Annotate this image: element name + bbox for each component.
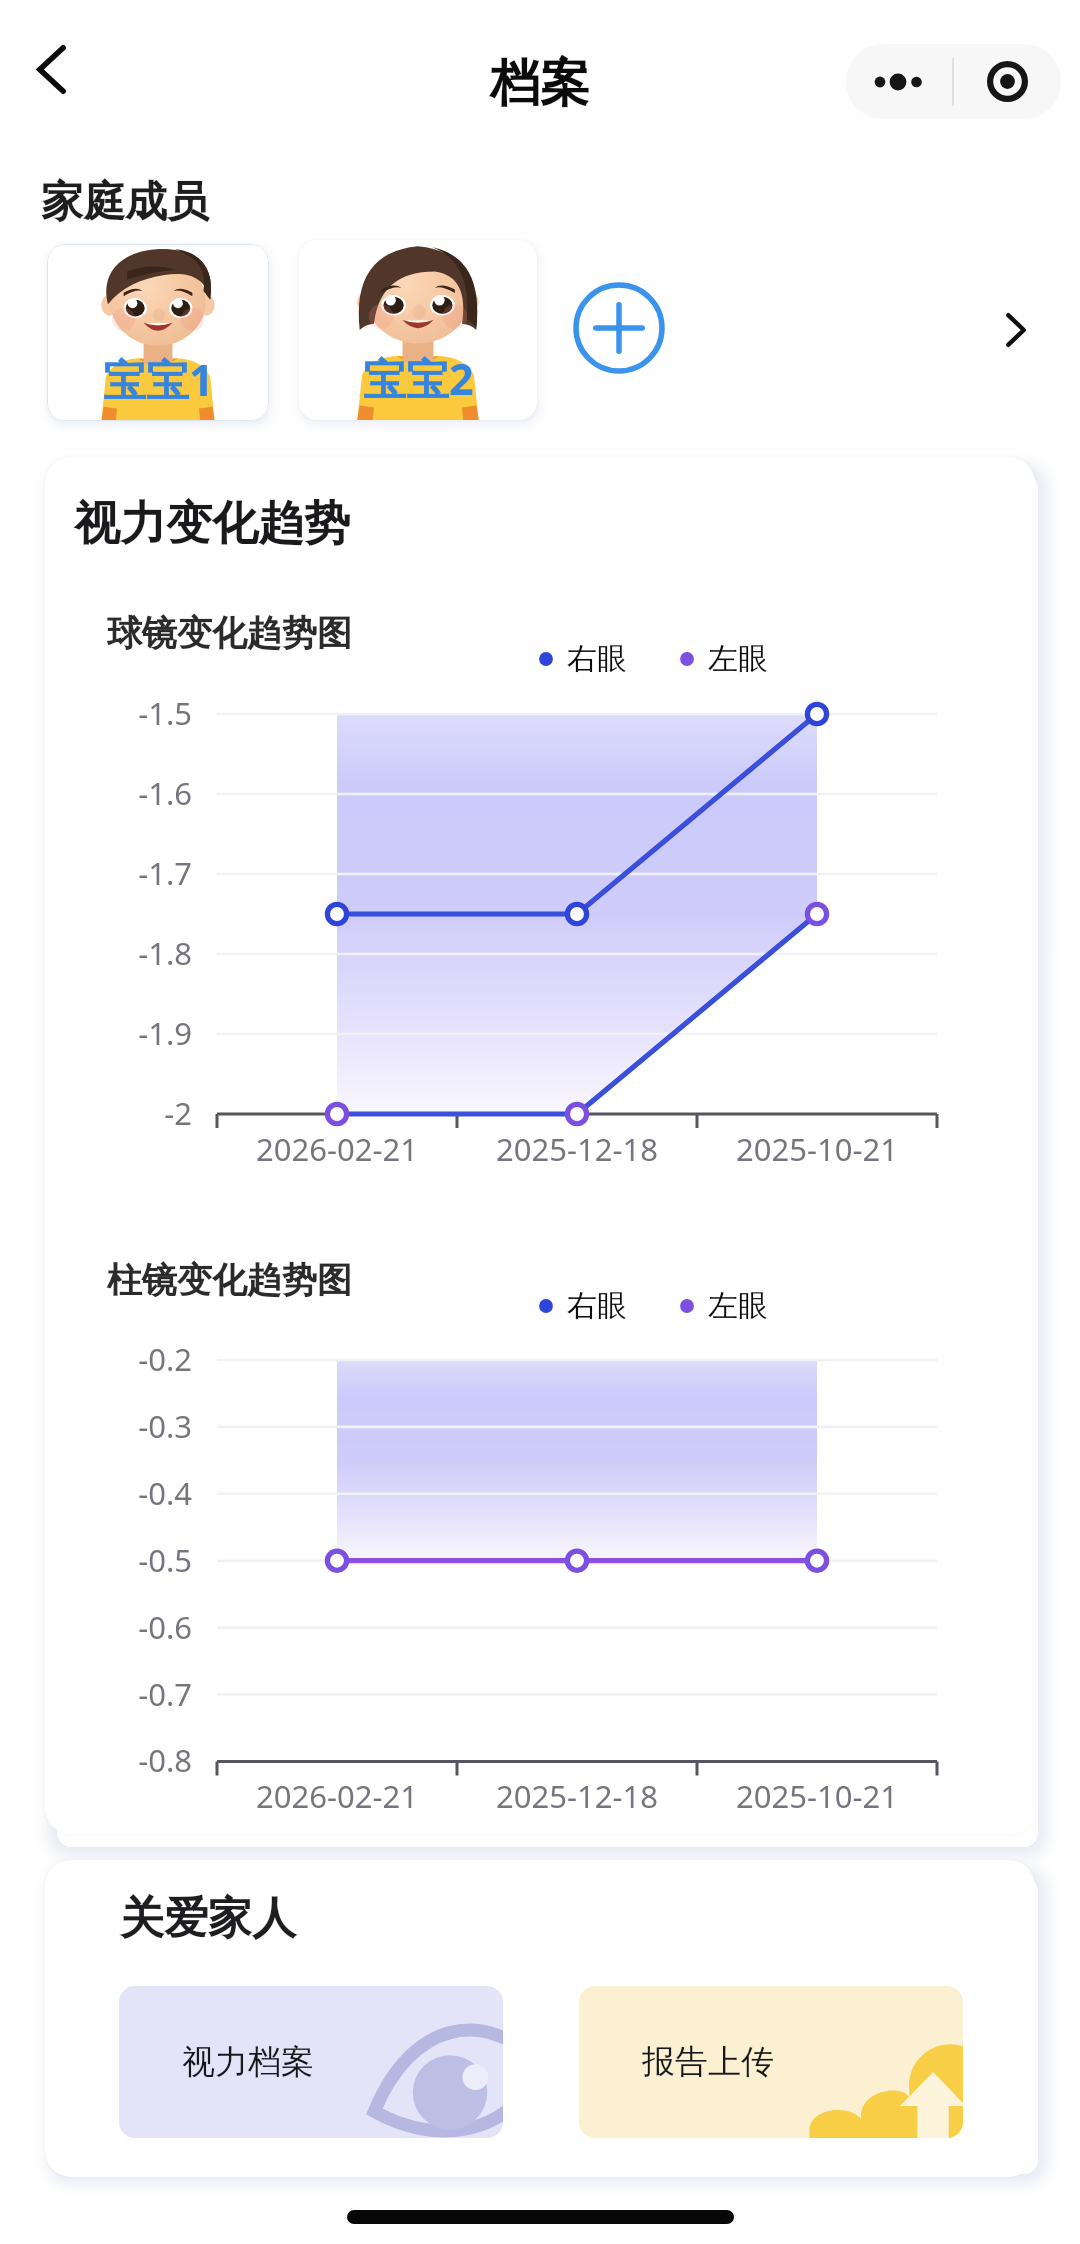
- staticText: 关爱家人: [120, 1891, 296, 1946]
- staticText: -2: [62, 1092, 192, 1134]
- staticText: 2025-10-21: [687, 1128, 947, 1170]
- staticText: -1.8: [62, 932, 192, 974]
- button[interactable]: Back: [8, 26, 94, 112]
- staticText: 档案: [490, 52, 590, 115]
- button[interactable]: 报告上传: [579, 1986, 963, 2138]
- button[interactable]: More members: [970, 284, 1062, 376]
- staticText: -0.5: [62, 1539, 192, 1581]
- staticText: -0.8: [62, 1739, 192, 1781]
- staticText: -0.2: [62, 1338, 192, 1380]
- staticText: 宝宝2: [363, 349, 474, 408]
- staticText: 视力档案: [182, 2041, 314, 2083]
- button[interactable]: 宝宝2: [299, 240, 537, 420]
- staticText: 左眼: [708, 1287, 768, 1325]
- staticText: -0.7: [62, 1673, 192, 1715]
- button[interactable]: Close mini program: [954, 44, 1061, 119]
- staticText: 球镜变化趋势图: [107, 611, 352, 655]
- staticText: 报告上传: [642, 2041, 774, 2083]
- staticText: 家庭成员: [41, 176, 209, 229]
- staticText: -0.3: [62, 1405, 192, 1447]
- staticText: 宝宝1: [103, 350, 214, 409]
- button[interactable]: 视力档案: [119, 1986, 503, 2138]
- button[interactable]: More options: [846, 44, 952, 119]
- button[interactable]: Add family member: [559, 268, 679, 388]
- staticText: 右眼: [567, 640, 627, 678]
- staticText: -1.5: [62, 692, 192, 734]
- staticText: -1.6: [62, 772, 192, 814]
- staticText: 2025-12-18: [447, 1775, 707, 1817]
- staticText: 左眼: [708, 640, 768, 678]
- staticText: 2025-10-21: [687, 1775, 947, 1817]
- button[interactable]: 宝宝1: [47, 244, 269, 421]
- staticText: -1.7: [62, 852, 192, 894]
- staticText: -0.6: [62, 1606, 192, 1648]
- staticText: 柱镜变化趋势图: [107, 1258, 352, 1302]
- staticText: 2026-02-21: [207, 1775, 467, 1817]
- staticText: -0.4: [62, 1472, 192, 1514]
- staticText: 右眼: [567, 1287, 627, 1325]
- staticText: 视力变化趋势: [74, 495, 350, 553]
- staticText: -1.9: [62, 1012, 192, 1054]
- staticText: 2026-02-21: [207, 1128, 467, 1170]
- staticText: 2025-12-18: [447, 1128, 707, 1170]
